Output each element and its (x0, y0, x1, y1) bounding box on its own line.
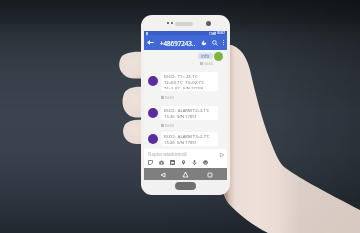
staticText: T4=3.0'C S/N 17108 (164, 86, 203, 89)
staticText: 15:26 S/N 17051 (164, 140, 197, 144)
button[interactable]: ESCO: ALARM T3=2.7'C (161, 132, 218, 146)
button[interactable]: Back (157, 169, 168, 180)
staticText: +48697243.. (160, 39, 196, 47)
button[interactable]: info (198, 53, 213, 59)
button[interactable]: Location (179, 158, 188, 167)
staticText: info (201, 53, 210, 59)
staticText: T2=03.7'C T3=02.7'C (164, 80, 205, 86)
button[interactable]: More options (220, 35, 227, 50)
button[interactable]: Camera (157, 158, 166, 167)
staticText: ESCO: ALARM T3=2.7'C (164, 134, 210, 140)
staticText: 04:53 (204, 61, 213, 66)
staticText: 04:54 (165, 123, 174, 128)
button[interactable]: Search (209, 35, 220, 50)
button[interactable]: Napisz wiadomość (144, 149, 227, 159)
button[interactable]: Sticker (146, 158, 155, 167)
staticText: 04:54 (165, 95, 174, 100)
staticText: ESCO: ALARM T2=3.1'C (164, 108, 210, 114)
staticText: Napisz wiadomość (148, 151, 188, 157)
button[interactable]: Send (218, 151, 225, 158)
button[interactable]: ESCO: ALARM T2=3.1'C (161, 106, 218, 120)
button[interactable]: Emoji (201, 158, 210, 167)
button[interactable]: Audio (190, 158, 199, 167)
button[interactable]: Gallery (168, 158, 177, 167)
button[interactable]: Call (198, 35, 209, 50)
button[interactable]: Recents (204, 169, 215, 180)
button[interactable]: Back (144, 35, 157, 50)
staticText: ESCO: T1= 23.1'C (164, 74, 198, 80)
button[interactable]: ESCO: T1= 23.1'C (161, 72, 218, 91)
staticText: □▲▮ 04:57 (209, 31, 226, 35)
staticText: 15:26 S/N 17051 (164, 114, 197, 118)
button[interactable]: Home (180, 169, 191, 180)
